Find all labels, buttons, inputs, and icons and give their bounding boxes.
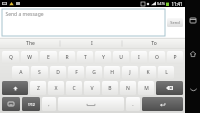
staticText: To [151,40,157,47]
button[interactable]: U [113,51,129,64]
button[interactable]: Send [167,18,183,27]
staticText: 54% [157,1,165,6]
button[interactable]: Send a message [2,9,165,36]
button[interactable]: B [102,81,118,95]
staticText: T [84,54,87,61]
button[interactable]: Keyboard settings [2,97,20,111]
staticText: Y [102,54,105,61]
staticText: E [47,54,50,61]
staticText: X [54,85,58,92]
staticText: F [75,69,78,76]
button[interactable]: !?12 [22,97,40,111]
button[interactable]: Q [2,51,19,64]
button[interactable]: E [40,51,57,64]
button[interactable]: H [104,66,120,79]
button[interactable]: Enter [142,97,183,111]
staticText: U [119,54,123,61]
staticText: R [65,54,69,61]
button[interactable]: T [77,51,93,64]
staticText: K [146,69,150,76]
button[interactable]: Backspace [156,81,183,95]
staticText: Q [9,54,13,61]
staticText: M [144,85,149,92]
staticText: B [108,85,112,92]
staticText: O [155,54,159,61]
button[interactable]: Back [187,84,199,96]
staticText: !?12 [28,102,35,107]
button[interactable]: M [138,81,154,95]
button[interactable]: J [122,66,138,79]
button[interactable]: F [68,66,84,79]
button[interactable]: . [126,97,140,111]
staticText: W [27,54,32,61]
staticText: 11:41 [171,1,183,7]
staticText: I [138,54,140,61]
button[interactable]: N [120,81,136,95]
button[interactable]: X [48,81,64,95]
button[interactable]: Recents [187,14,199,26]
staticText: G [92,69,96,76]
staticText: C [72,85,76,92]
staticText: V [90,85,94,92]
button[interactable]: G [86,66,102,79]
button[interactable]: O [149,51,165,64]
button[interactable]: , [42,97,56,111]
staticText: Send [170,20,180,25]
button[interactable]: L [158,66,174,79]
staticText: . [132,101,134,108]
staticText: A [19,69,23,76]
button[interactable]: Shift [2,81,28,95]
button[interactable]: P [167,51,183,64]
button[interactable]: A [12,66,29,79]
button[interactable]: K [140,66,156,79]
staticText: J [129,69,131,76]
staticText: I [91,40,93,47]
staticText: H [110,69,114,76]
button[interactable]: R [59,51,75,64]
staticText: L [165,69,168,76]
staticText: The [26,40,35,47]
button[interactable]: Home [187,48,199,60]
button[interactable]: The [0,38,61,49]
staticText: , [48,101,50,108]
staticText: P [173,54,177,61]
staticText: S [38,69,41,76]
button[interactable]: S [31,66,48,79]
staticText: N [126,85,130,92]
staticText: D [56,69,60,76]
button[interactable]: I [61,38,123,49]
button[interactable]: Z [30,81,46,95]
button[interactable]: D [50,66,66,79]
button[interactable]: C [66,81,82,95]
button[interactable]: Space [58,97,124,111]
staticText: Z [37,85,40,92]
button[interactable]: Y [95,51,111,64]
button[interactable]: V [84,81,100,95]
button[interactable]: I [131,51,147,64]
button[interactable]: To [123,38,185,49]
staticText: Send a message [5,11,44,18]
button[interactable]: W [21,51,38,64]
